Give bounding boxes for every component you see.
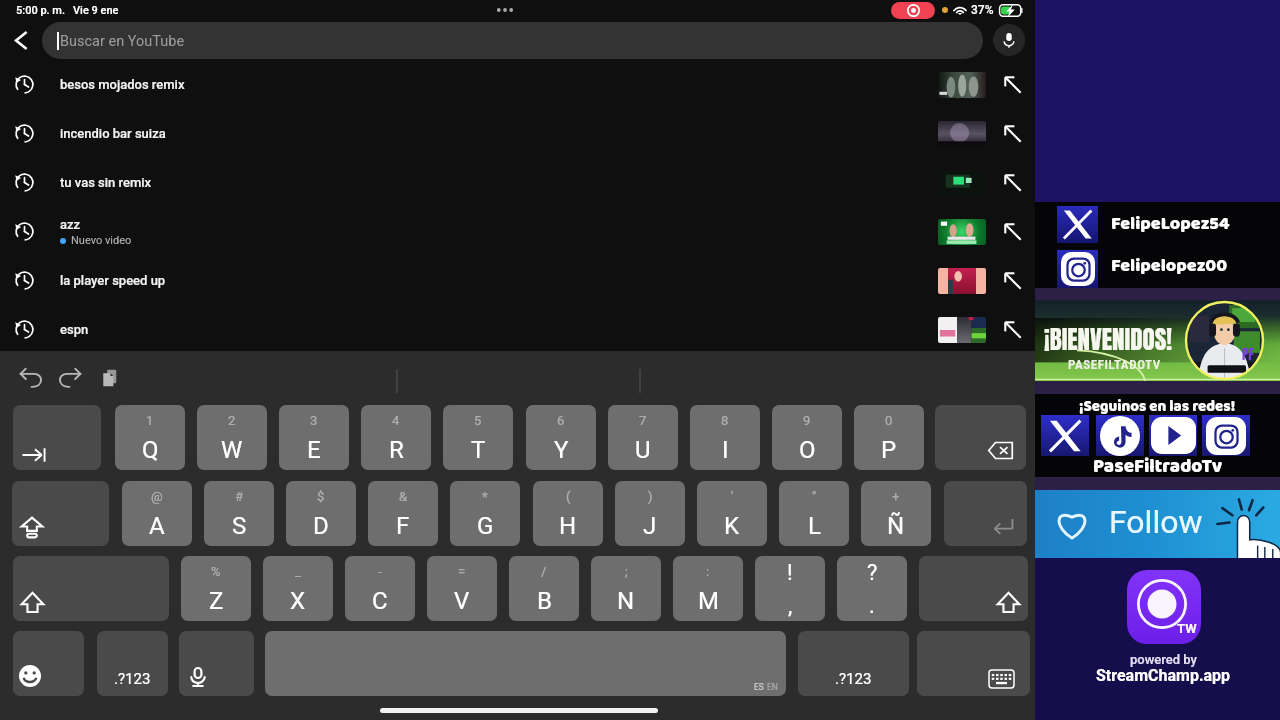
button[interactable]: Voice input (179, 631, 254, 696)
staticText: 8 (721, 413, 729, 428)
staticText: 7 (639, 413, 647, 428)
staticText: H (559, 512, 577, 540)
button[interactable]: " (779, 481, 849, 546)
button[interactable]: YouTube (1149, 415, 1197, 456)
button[interactable]: Emoji (13, 631, 84, 696)
staticText: ; (625, 564, 628, 579)
button[interactable]: 2 (197, 405, 267, 470)
button[interactable]: # (204, 481, 274, 546)
button[interactable]: X profile (1057, 206, 1098, 243)
button[interactable]: Undo (18, 365, 44, 391)
button[interactable] (919, 556, 1028, 621)
button[interactable]: incendio bar suiza (0, 109, 1035, 158)
button[interactable]: & (368, 481, 438, 546)
button[interactable]: * (450, 481, 520, 546)
button[interactable]: Follow (1035, 490, 1280, 558)
staticText: . (869, 593, 875, 619)
button[interactable]: 1 (115, 405, 185, 470)
staticText: ' (731, 489, 734, 504)
staticText: , (788, 593, 793, 619)
staticText: PF (1242, 345, 1254, 365)
button[interactable]: la player speed up (0, 256, 1035, 305)
button[interactable] (13, 405, 101, 470)
button[interactable]: ' (697, 481, 767, 546)
button[interactable]: 4 (361, 405, 431, 470)
button[interactable]: = (427, 556, 497, 621)
button[interactable]: 6 (526, 405, 596, 470)
button[interactable]: $ (286, 481, 356, 546)
button[interactable]: ? (837, 556, 907, 621)
staticText: besos mojados remix (60, 77, 185, 92)
button[interactable]: Redo (57, 365, 83, 391)
button[interactable]: Voice search (993, 24, 1025, 56)
button[interactable]: TikTok (1096, 415, 1144, 456)
button[interactable]: 3 (279, 405, 349, 470)
staticText: C (372, 587, 388, 615)
button[interactable]: Hide keyboard (917, 631, 1030, 696)
staticText: ¡Seguinos en las redes! (1079, 395, 1236, 419)
staticText: Follow (1109, 503, 1203, 541)
button[interactable]: 5 (443, 405, 513, 470)
button[interactable]: azz (0, 207, 1035, 256)
staticText: X (290, 587, 306, 615)
staticText: 6 (557, 413, 565, 428)
staticText: @ (151, 489, 163, 504)
button[interactable]: % (181, 556, 251, 621)
staticText: 1 (146, 413, 154, 428)
button[interactable]: tu vas sin remix (0, 158, 1035, 207)
button[interactable]: Clipboard (98, 366, 122, 390)
staticText: .?123 (114, 670, 151, 688)
button[interactable]: X (1041, 415, 1089, 456)
staticText: EN (767, 682, 778, 692)
button[interactable]: Use this suggestion (995, 158, 1029, 207)
button[interactable] (13, 556, 169, 621)
button[interactable]: 0 (854, 405, 924, 470)
staticText: ( (566, 489, 571, 504)
staticText: _ (295, 564, 301, 579)
button[interactable] (12, 481, 109, 546)
button[interactable]: : (673, 556, 743, 621)
button[interactable]: .?123 (798, 631, 909, 696)
button[interactable]: _ (263, 556, 333, 621)
button[interactable]: Use this suggestion (995, 207, 1029, 256)
button[interactable]: Back (0, 20, 42, 60)
staticText: Nuevo video (71, 234, 132, 247)
button[interactable]: / (509, 556, 579, 621)
button[interactable]: ( (533, 481, 603, 546)
staticText: : (706, 564, 710, 579)
staticText: E (307, 436, 321, 464)
button[interactable] (935, 405, 1026, 470)
button[interactable]: besos mojados remix (0, 60, 1035, 109)
button[interactable]: espn (0, 305, 1035, 354)
button[interactable] (944, 481, 1027, 546)
button[interactable]: Instagram profile (1057, 250, 1098, 288)
button[interactable]: Instagram (1202, 415, 1250, 456)
button[interactable]: 7 (608, 405, 678, 470)
button[interactable]: ! (755, 556, 825, 621)
button[interactable]: ) (615, 481, 685, 546)
button[interactable]: Use this suggestion (995, 256, 1029, 305)
button[interactable]: 9 (772, 405, 842, 470)
staticText: L (808, 512, 821, 540)
staticText: S (232, 512, 247, 540)
button[interactable]: Use this suggestion (995, 109, 1029, 158)
staticText: Felipelopez00 (1111, 252, 1228, 281)
button[interactable]: Buscar en YouTube (42, 22, 983, 59)
staticText: - (378, 564, 382, 579)
staticText: .?123 (835, 670, 872, 688)
staticText: 9 (803, 413, 811, 428)
button[interactable]: + (861, 481, 931, 546)
staticText: PASEFILTADOTV (1068, 357, 1161, 372)
button[interactable]: 8 (690, 405, 760, 470)
staticText: 37% (971, 3, 994, 17)
button[interactable]: ; (591, 556, 661, 621)
button[interactable]: Space (265, 631, 786, 696)
staticText: Vie 9 ene (73, 4, 119, 17)
staticText: F (396, 512, 410, 540)
button[interactable]: Use this suggestion (995, 305, 1029, 354)
staticText: ? (867, 560, 878, 586)
button[interactable]: - (345, 556, 415, 621)
button[interactable]: .?123 (97, 631, 168, 696)
button[interactable]: Use this suggestion (995, 60, 1029, 109)
button[interactable]: @ (122, 481, 192, 546)
